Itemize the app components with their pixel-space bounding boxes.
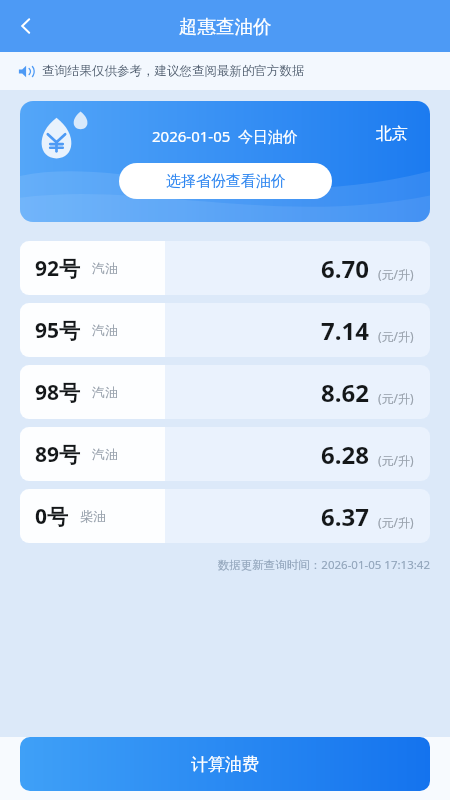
- staticText: 8.62: [321, 376, 369, 409]
- button[interactable]: 98号: [20, 365, 430, 419]
- staticText: (元/升): [378, 328, 414, 344]
- staticText: 汽油: [92, 322, 118, 338]
- staticText: 汽油: [92, 446, 118, 462]
- staticText: (元/升): [378, 266, 414, 282]
- staticText: 计算油费: [191, 754, 259, 775]
- staticText: 查询结果仅供参考，建议您查阅最新的官方数据: [42, 63, 305, 79]
- staticText: 6.70: [321, 252, 369, 285]
- button[interactable]: 0号: [20, 489, 430, 543]
- button[interactable]: 95号: [20, 303, 430, 357]
- staticText: 0号: [35, 502, 69, 531]
- staticText: (元/升): [378, 390, 414, 406]
- button[interactable]: 计算油费: [20, 737, 430, 791]
- staticText: 6.37: [321, 500, 369, 533]
- staticText: 北京: [376, 124, 408, 144]
- staticText: (元/升): [378, 452, 414, 468]
- staticText: 98号: [35, 378, 81, 407]
- staticText: 选择省份查看油价: [166, 172, 286, 191]
- staticText: 92号: [35, 254, 81, 283]
- button[interactable]: 选择省份查看油价: [119, 163, 332, 199]
- staticText: 数据更新查询时间：2026-01-05 17:13:42: [0, 557, 430, 573]
- staticText: 2026-01-05 今日油价: [152, 126, 299, 146]
- staticText: 95号: [35, 316, 81, 345]
- staticText: 汽油: [92, 384, 118, 400]
- button[interactable]: 89号: [20, 427, 430, 481]
- button[interactable]: 92号: [20, 241, 430, 295]
- staticText: 柴油: [80, 508, 106, 524]
- staticText: 汽油: [92, 260, 118, 276]
- staticText: (元/升): [378, 514, 414, 530]
- staticText: 7.14: [321, 314, 369, 347]
- staticText: 89号: [35, 440, 81, 469]
- button[interactable]: Back: [0, 0, 52, 52]
- staticText: 6.28: [321, 438, 369, 471]
- staticText: 超惠查油价: [179, 15, 272, 38]
